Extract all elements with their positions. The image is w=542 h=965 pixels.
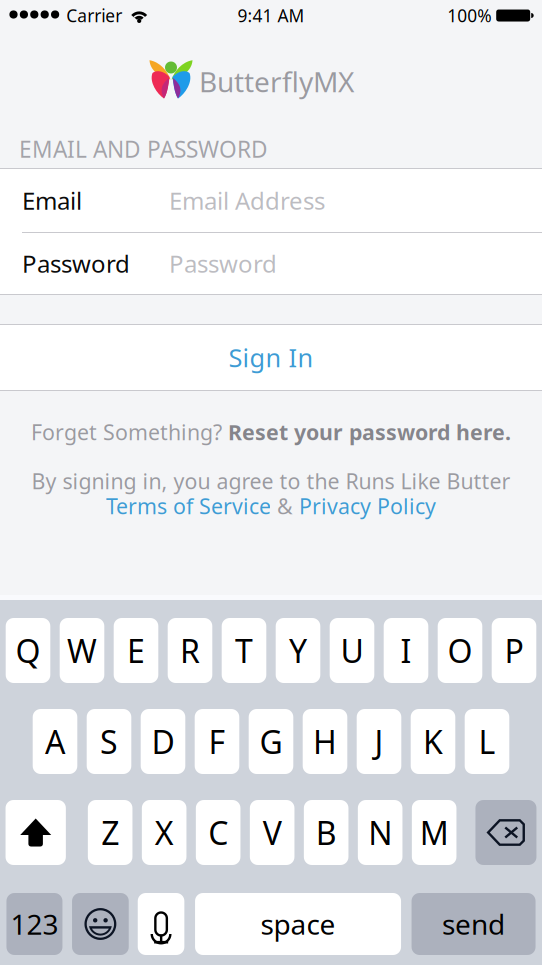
button[interactable]: R bbox=[168, 618, 212, 683]
button[interactable]: Emoji bbox=[72, 893, 129, 955]
staticText: By signing in, you agree to the Runs Lik… bbox=[31, 467, 510, 495]
button[interactable]: P bbox=[492, 618, 536, 683]
button[interactable]: Dictation bbox=[138, 893, 184, 955]
button[interactable]: V bbox=[250, 800, 294, 865]
button[interactable]: Delete bbox=[475, 800, 536, 865]
staticText: D bbox=[151, 720, 174, 763]
button[interactable]: S bbox=[87, 709, 131, 774]
button[interactable]: W bbox=[60, 618, 104, 683]
staticText: P bbox=[504, 629, 523, 672]
button[interactable]: H bbox=[303, 709, 347, 774]
button[interactable]: Y bbox=[276, 618, 320, 683]
button[interactable]: F bbox=[195, 709, 239, 774]
staticText: W bbox=[67, 629, 97, 672]
staticText: N bbox=[368, 811, 392, 854]
button[interactable]: O bbox=[438, 618, 482, 683]
staticText: F bbox=[208, 720, 225, 763]
button[interactable]: send bbox=[412, 893, 536, 955]
button[interactable]: J bbox=[357, 709, 401, 774]
staticText: R bbox=[180, 629, 200, 672]
staticText: J bbox=[374, 720, 383, 763]
staticText: Sign In bbox=[228, 341, 313, 374]
staticText: space bbox=[260, 905, 335, 943]
button[interactable]: Q bbox=[6, 618, 50, 683]
button[interactable]: A bbox=[33, 709, 77, 774]
staticText: I bbox=[400, 629, 411, 672]
staticText: L bbox=[478, 720, 495, 763]
button[interactable]: Terms of Service bbox=[106, 492, 271, 520]
staticText: Z bbox=[101, 811, 119, 854]
button[interactable]: Sign In bbox=[0, 325, 542, 390]
staticText: C bbox=[208, 811, 228, 854]
staticText: Y bbox=[289, 629, 307, 672]
staticText: Forget Something? bbox=[31, 418, 228, 446]
staticText: B bbox=[316, 811, 337, 854]
button[interactable]: C bbox=[196, 800, 240, 865]
button[interactable]: Password bbox=[0, 233, 542, 294]
button[interactable]: B bbox=[304, 800, 348, 865]
staticText: Carrier bbox=[66, 4, 122, 27]
staticText: Terms of Service bbox=[106, 492, 271, 520]
staticText: X bbox=[155, 811, 174, 854]
button[interactable]: I bbox=[384, 618, 428, 683]
staticText: Email bbox=[22, 185, 82, 216]
staticText: G bbox=[259, 720, 282, 763]
staticText: Password bbox=[22, 248, 130, 279]
button[interactable]: T bbox=[222, 618, 266, 683]
staticText: H bbox=[313, 720, 337, 763]
button[interactable]: Forget Something? bbox=[31, 421, 511, 443]
button[interactable]: space bbox=[195, 893, 401, 955]
staticText: E bbox=[127, 629, 145, 672]
staticText: & bbox=[271, 492, 299, 520]
button[interactable]: N bbox=[358, 800, 402, 865]
button[interactable]: Privacy Policy bbox=[299, 492, 436, 520]
staticText: K bbox=[423, 720, 443, 763]
staticText: S bbox=[100, 720, 118, 763]
staticText: Email Address bbox=[169, 185, 325, 216]
button[interactable]: Email bbox=[0, 169, 542, 232]
staticText: Q bbox=[15, 629, 40, 672]
button[interactable]: L bbox=[465, 709, 509, 774]
button[interactable]: Z bbox=[88, 800, 132, 865]
button[interactable]: G bbox=[249, 709, 293, 774]
button[interactable]: E bbox=[114, 618, 158, 683]
staticText: 9:41 AM bbox=[237, 4, 304, 27]
staticText: EMAIL AND PASSWORD bbox=[19, 134, 268, 164]
staticText: A bbox=[45, 720, 65, 763]
staticText: Reset your password here. bbox=[228, 418, 511, 446]
button[interactable]: X bbox=[142, 800, 186, 865]
staticText: 100% bbox=[447, 4, 491, 27]
staticText: U bbox=[340, 629, 363, 672]
button[interactable]: U bbox=[330, 618, 374, 683]
staticText: V bbox=[263, 811, 282, 854]
button[interactable]: M bbox=[412, 800, 456, 865]
staticText: T bbox=[235, 629, 253, 672]
button[interactable]: Shift bbox=[5, 800, 66, 865]
staticText: send bbox=[442, 905, 505, 943]
staticText: O bbox=[447, 629, 472, 672]
button[interactable]: K bbox=[411, 709, 455, 774]
button[interactable]: 123 bbox=[6, 893, 62, 955]
staticText: M bbox=[420, 811, 449, 854]
button[interactable]: D bbox=[141, 709, 185, 774]
staticText: 123 bbox=[10, 905, 58, 943]
staticText: Privacy Policy bbox=[299, 492, 436, 520]
staticText: ButterflyMX bbox=[199, 63, 354, 100]
staticText: Password bbox=[169, 248, 277, 279]
